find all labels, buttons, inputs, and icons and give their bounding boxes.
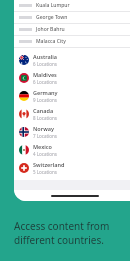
staticText: Canada [33, 107, 54, 114]
button[interactable]: Canada flag [14, 105, 130, 123]
staticText: Kuala Lumpur [36, 2, 70, 9]
button[interactable]: George Town [14, 12, 130, 24]
button[interactable]: Norway flag [14, 123, 130, 141]
button[interactable]: Germany flag [14, 87, 130, 105]
staticText: Johor Bahru [36, 26, 65, 33]
staticText: Norway [33, 125, 54, 132]
staticText: 5 Locations [33, 169, 57, 175]
other: Mexico flag [19, 145, 29, 155]
staticText: 7 Locations [33, 133, 57, 139]
staticText: 4 Locations [33, 151, 57, 157]
staticText: 9 Locations [33, 97, 57, 103]
other: Canada flag [19, 109, 29, 119]
button[interactable]: Malacca City [14, 36, 130, 48]
staticText: Access content from [14, 219, 110, 233]
other: Germany flag [19, 91, 29, 101]
button[interactable]: Switzerland flag [14, 159, 130, 177]
staticText: George Town [36, 14, 68, 21]
staticText: Maldives [33, 71, 57, 78]
staticText: Switzerland [33, 161, 65, 168]
staticText: 6 Locations [33, 61, 57, 67]
staticText: Australia [33, 53, 57, 60]
other: Australia flag [19, 55, 29, 65]
staticText: Germany [33, 89, 58, 96]
other: Switzerland flag [19, 163, 29, 173]
button[interactable]: Australia flag [14, 51, 130, 69]
other: Maldives flag [19, 73, 29, 83]
staticText: different countries. [14, 233, 104, 247]
staticText: 6 Locations [33, 79, 57, 85]
staticText: Malacca City [36, 38, 66, 45]
button[interactable]: Johor Bahru [14, 24, 130, 36]
button[interactable]: Maldives flag [14, 69, 130, 87]
staticText: Mexico [33, 143, 53, 150]
other: Norway flag [19, 127, 29, 137]
button[interactable]: Kuala Lumpur [14, 0, 130, 12]
button[interactable]: Mexico flag [14, 141, 130, 159]
staticText: 8 Locations [33, 115, 57, 121]
